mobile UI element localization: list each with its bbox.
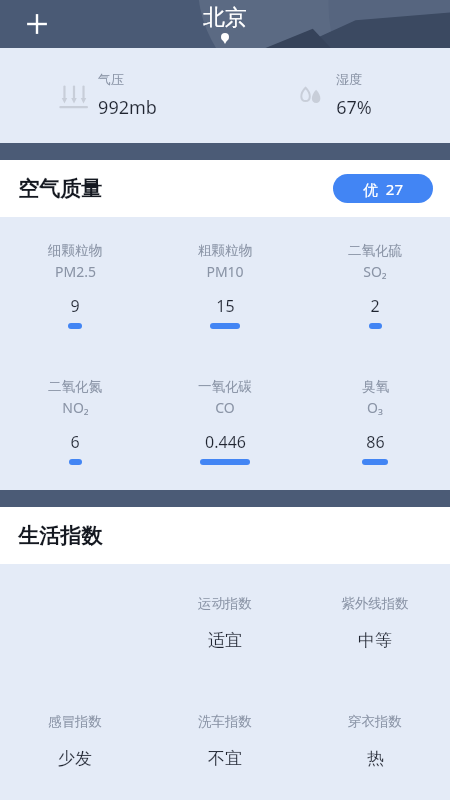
staticText: 0.446 bbox=[205, 431, 246, 453]
staticText: 粗颗粒物 bbox=[198, 242, 252, 259]
staticText: 湿度 bbox=[336, 71, 362, 87]
button[interactable]: 二氧化硫 bbox=[300, 217, 450, 353]
staticText: 紫外线指数 bbox=[341, 595, 409, 612]
staticText: NO₂ bbox=[62, 398, 89, 417]
staticText: 86 bbox=[366, 431, 385, 453]
staticText: 热 bbox=[367, 748, 384, 769]
button[interactable]: 一氧化碳 bbox=[150, 353, 300, 490]
button[interactable]: 湿度 bbox=[225, 48, 450, 143]
staticText: 2 bbox=[370, 295, 380, 317]
button[interactable]: 运动指数 bbox=[150, 564, 300, 682]
button[interactable]: 二氧化氮 bbox=[0, 353, 150, 490]
staticText: 一氧化碳 bbox=[198, 378, 252, 395]
button[interactable]: 臭氧 bbox=[300, 353, 450, 490]
staticText: 中等 bbox=[358, 630, 392, 651]
staticText: 二氧化氮 bbox=[48, 378, 102, 395]
staticText: 气压 bbox=[98, 71, 124, 87]
staticText: 感冒指数 bbox=[48, 713, 102, 730]
staticText: 运动指数 bbox=[198, 595, 252, 612]
staticText: 优 27 bbox=[363, 179, 403, 199]
staticText: 9 bbox=[70, 295, 80, 317]
staticText: PM10 bbox=[206, 262, 244, 281]
staticText: SO₂ bbox=[363, 262, 387, 281]
button[interactable]: 紫外线指数 bbox=[300, 564, 450, 682]
button[interactable]: 优 27 bbox=[333, 174, 433, 203]
staticText: 不宜 bbox=[208, 748, 242, 769]
staticText: 二氧化硫 bbox=[348, 242, 402, 259]
button[interactable]: 气压 bbox=[0, 48, 225, 143]
staticText: PM2.5 bbox=[55, 262, 96, 281]
staticText: 少发 bbox=[58, 748, 92, 769]
staticText: CO bbox=[215, 398, 235, 417]
staticText: 洗车指数 bbox=[198, 713, 252, 730]
button[interactable]: 空气质量 bbox=[0, 160, 450, 217]
staticText: O₃ bbox=[367, 398, 383, 417]
staticText: 生活指数 bbox=[18, 523, 102, 549]
staticText: 臭氧 bbox=[362, 378, 389, 395]
staticText: 适宜 bbox=[208, 630, 242, 651]
button[interactable]: 细颗粒物 bbox=[0, 217, 150, 353]
staticText: 细颗粒物 bbox=[48, 242, 102, 259]
button[interactable]: 感冒指数 bbox=[0, 682, 150, 800]
staticText: 992mb bbox=[98, 95, 157, 120]
staticText: 6 bbox=[70, 431, 80, 453]
staticText: 北京 bbox=[203, 4, 247, 32]
staticText: 空气质量 bbox=[18, 176, 102, 202]
button[interactable]: 洗车指数 bbox=[150, 682, 300, 800]
button[interactable]: 生活指数 bbox=[0, 507, 450, 564]
staticText: 穿衣指数 bbox=[348, 713, 402, 730]
button[interactable]: 粗颗粒物 bbox=[150, 217, 300, 353]
button[interactable]: Add city bbox=[14, 1, 60, 47]
staticText: 15 bbox=[216, 295, 235, 317]
staticText: 67% bbox=[336, 95, 372, 120]
button[interactable]: 穿衣指数 bbox=[300, 682, 450, 800]
